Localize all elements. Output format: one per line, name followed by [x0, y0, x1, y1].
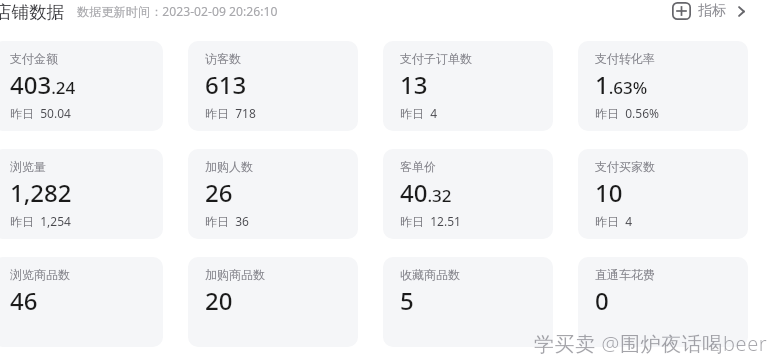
button[interactable]: 添加指标 — [672, 2, 747, 20]
staticText: 10 — [595, 176, 623, 209]
staticText: 昨日 12.51 — [400, 213, 461, 229]
staticText: 1.63% — [595, 68, 648, 101]
button[interactable]: 支付金额 — [0, 41, 163, 131]
staticText: 26 — [205, 176, 233, 209]
button[interactable]: 收藏商品数 — [383, 257, 553, 347]
staticText: 403.24 — [10, 68, 76, 101]
button[interactable]: 客单价 — [383, 149, 553, 239]
button[interactable]: 浏览量 — [0, 149, 163, 239]
staticText: 1,282 — [10, 176, 72, 209]
staticText: 加购商品数 — [205, 267, 265, 282]
staticText: 昨日 1,254 — [10, 213, 71, 229]
button[interactable]: 加购商品数 — [188, 257, 358, 347]
staticText: 5 — [400, 284, 414, 317]
staticText: 支付转化率 — [595, 51, 655, 66]
button[interactable]: 支付买家数 — [578, 149, 748, 239]
staticText: 浏览量 — [10, 159, 46, 174]
staticText: 学买卖 @围炉夜话喝beer — [534, 330, 768, 357]
staticText: 指标 — [698, 2, 726, 20]
staticText: 20 — [205, 284, 233, 317]
staticText: 访客数 — [205, 51, 241, 66]
staticText: 昨日 4 — [400, 105, 438, 121]
staticText: 浏览商品数 — [10, 267, 70, 282]
staticText: 直通车花费 — [595, 267, 655, 282]
staticText: 昨日 4 — [595, 213, 633, 229]
staticText: 40.32 — [400, 176, 452, 209]
button[interactable]: 访客数 — [188, 41, 358, 131]
staticText: 支付子订单数 — [400, 51, 472, 66]
staticText: 店铺数据 — [0, 1, 64, 23]
staticText: 收藏商品数 — [400, 267, 460, 282]
staticText: 客单价 — [400, 159, 436, 174]
button[interactable]: 加购人数 — [188, 149, 358, 239]
button[interactable]: 支付子订单数 — [383, 41, 553, 131]
staticText: 0 — [595, 284, 609, 317]
button[interactable]: 支付转化率 — [578, 41, 748, 131]
staticText: 数据更新时间：2023-02-09 20:26:10 — [77, 3, 278, 20]
staticText: 支付金额 — [10, 51, 58, 66]
staticText: 支付买家数 — [595, 159, 655, 174]
button[interactable]: 浏览商品数 — [0, 257, 163, 347]
button[interactable]: 直通车花费 — [578, 257, 748, 347]
staticText: 昨日 36 — [205, 213, 249, 229]
staticText: 昨日 0.56% — [595, 105, 660, 121]
staticText: 13 — [400, 68, 428, 101]
staticText: 加购人数 — [205, 159, 253, 174]
staticText: 613 — [205, 68, 247, 101]
staticText: 昨日 50.04 — [10, 105, 71, 121]
staticText: 昨日 718 — [205, 105, 256, 121]
staticText: 46 — [10, 284, 38, 317]
